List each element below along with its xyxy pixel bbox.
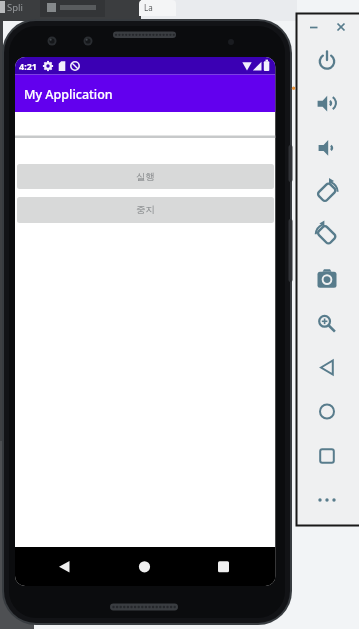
button[interactable] <box>312 353 342 383</box>
button[interactable]: 실행 <box>17 164 274 189</box>
button[interactable]: 중지 <box>17 197 274 223</box>
staticText: Spli <box>7 1 23 14</box>
button[interactable] <box>312 441 342 471</box>
button[interactable] <box>312 89 342 119</box>
button[interactable] <box>312 46 342 76</box>
button[interactable] <box>304 20 322 35</box>
button[interactable] <box>48 551 80 582</box>
button[interactable] <box>312 177 342 207</box>
button[interactable] <box>312 133 342 163</box>
staticText: La <box>144 2 153 13</box>
staticText: 중지 <box>136 204 155 216</box>
staticText: 실행 <box>136 171 155 183</box>
button[interactable] <box>312 264 342 294</box>
button[interactable] <box>128 551 160 582</box>
button[interactable] <box>312 220 342 250</box>
button[interactable] <box>312 485 342 515</box>
button[interactable] <box>332 20 350 35</box>
staticText: My Application <box>24 86 113 103</box>
button[interactable] <box>312 308 342 338</box>
button[interactable] <box>312 397 342 427</box>
staticText: 4:21 <box>19 60 37 72</box>
button[interactable] <box>207 551 239 582</box>
